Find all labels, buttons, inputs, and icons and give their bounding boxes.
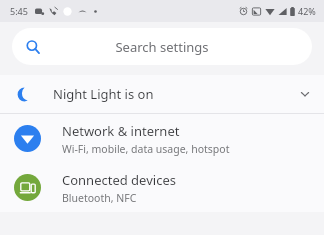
staticText: Wi-Fi, mobile, data usage, hotspot	[62, 142, 230, 156]
staticText: 5:45	[10, 5, 28, 17]
button[interactable]: Connected devices	[0, 163, 324, 212]
staticText: Search settings	[115, 38, 209, 56]
staticText: Connected devices	[62, 171, 176, 189]
staticText: 42%	[298, 5, 316, 17]
button[interactable]: Search	[12, 28, 312, 65]
other: Expand	[299, 88, 311, 100]
staticText: Night Light is on	[53, 85, 154, 103]
button[interactable]: Night Light is on	[0, 75, 324, 113]
other: Search	[26, 40, 40, 54]
staticText: Network & internet	[62, 122, 180, 140]
staticText: Bluetooth, NFC	[62, 191, 137, 205]
button[interactable]: Network & internet	[0, 114, 324, 163]
